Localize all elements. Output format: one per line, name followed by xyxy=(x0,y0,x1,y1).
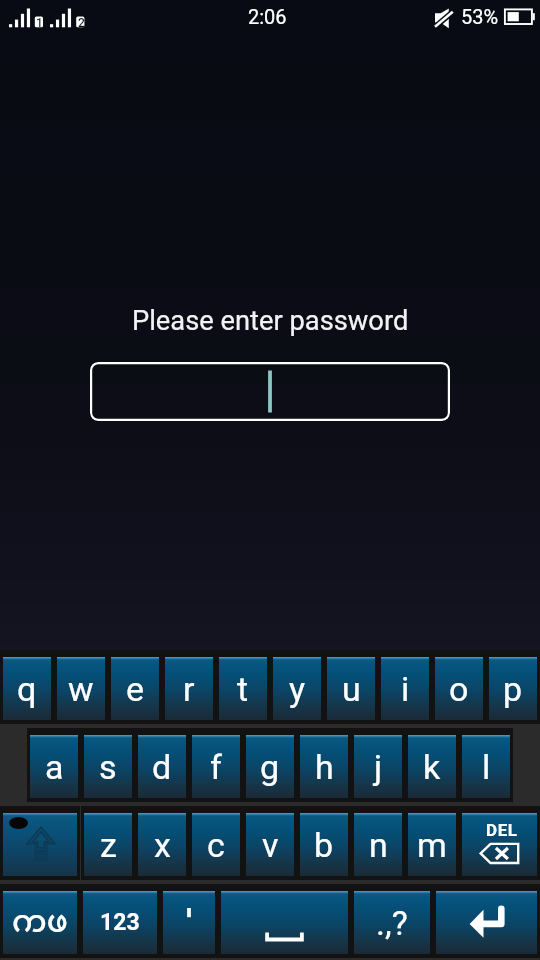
staticText: n xyxy=(369,825,388,865)
staticText: d xyxy=(152,747,172,787)
staticText: e xyxy=(126,669,145,709)
button[interactable]: i xyxy=(378,650,432,724)
button[interactable]: Space xyxy=(218,884,351,958)
staticText: Please enter password xyxy=(132,305,409,337)
button[interactable]: Delete xyxy=(459,806,540,880)
staticText: b xyxy=(314,825,334,865)
button[interactable]: o xyxy=(432,650,486,724)
staticText: x xyxy=(154,825,171,865)
button[interactable]: z xyxy=(81,806,135,880)
staticText: ကဖ xyxy=(12,891,68,954)
button[interactable]: .,? xyxy=(351,884,433,958)
staticText: k xyxy=(423,747,441,787)
staticText: i xyxy=(401,669,410,709)
button[interactable]: d xyxy=(135,728,189,802)
button[interactable]: l xyxy=(459,728,513,802)
button[interactable]: m xyxy=(405,806,459,880)
staticText: f xyxy=(210,747,222,787)
button[interactable]: y xyxy=(270,650,324,724)
staticText: l xyxy=(482,747,491,787)
button[interactable]: h xyxy=(297,728,351,802)
staticText: s xyxy=(99,747,117,787)
staticText: g xyxy=(260,747,280,787)
staticText: z xyxy=(100,825,117,865)
staticText: 2 xyxy=(78,16,85,30)
button[interactable]: Change language xyxy=(0,884,80,958)
staticText: .,? xyxy=(376,903,408,943)
staticText: h xyxy=(315,747,334,787)
staticText: 2:06 xyxy=(248,5,287,28)
button[interactable]: j xyxy=(351,728,405,802)
button[interactable]: v xyxy=(243,806,297,880)
button[interactable] xyxy=(160,884,218,958)
staticText: r xyxy=(183,669,195,709)
staticText: u xyxy=(342,669,361,709)
staticText: a xyxy=(45,747,64,787)
button[interactable]: 123 xyxy=(80,884,160,958)
button[interactable]: g xyxy=(243,728,297,802)
button[interactable]: t xyxy=(216,650,270,724)
button[interactable]: k xyxy=(405,728,459,802)
staticText: 1 xyxy=(36,16,43,30)
staticText: p xyxy=(503,669,523,709)
staticText: q xyxy=(17,669,37,709)
staticText: 53% xyxy=(461,5,499,28)
button[interactable]: b xyxy=(297,806,351,880)
staticText: y xyxy=(289,669,306,709)
button[interactable]: Enter xyxy=(433,884,540,958)
button[interactable]: s xyxy=(81,728,135,802)
staticText: v xyxy=(262,825,279,865)
button[interactable]: n xyxy=(351,806,405,880)
button[interactable]: a xyxy=(27,728,81,802)
button[interactable]: r xyxy=(162,650,216,724)
button[interactable]: Shift xyxy=(0,806,80,880)
button[interactable]: q xyxy=(0,650,54,724)
staticText: m xyxy=(417,825,447,865)
staticText: t xyxy=(237,669,249,709)
staticText: 123 xyxy=(100,909,140,936)
button[interactable] xyxy=(90,362,450,421)
button[interactable]: f xyxy=(189,728,243,802)
button[interactable]: x xyxy=(135,806,189,880)
button[interactable]: e xyxy=(108,650,162,724)
button[interactable]: w xyxy=(54,650,108,724)
staticText: j xyxy=(374,747,383,787)
button[interactable]: p xyxy=(486,650,540,724)
staticText: w xyxy=(68,669,94,709)
button[interactable]: c xyxy=(189,806,243,880)
button[interactable]: u xyxy=(324,650,378,724)
staticText: o xyxy=(449,669,469,709)
staticText: DEL xyxy=(486,820,518,840)
staticText: c xyxy=(207,825,225,865)
